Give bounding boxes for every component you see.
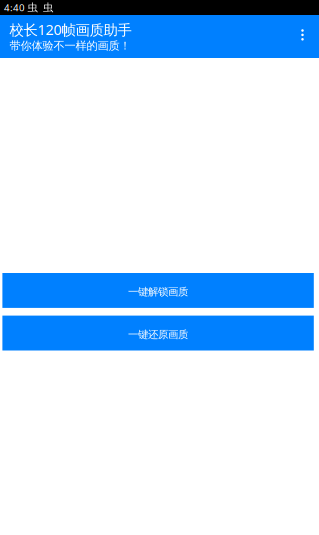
staticText: 一键解锁画质 <box>128 285 188 298</box>
button[interactable]: 一键还原画质 <box>2 316 314 350</box>
staticText: 一键还原画质 <box>128 328 188 341</box>
staticText: 虫 <box>43 1 53 14</box>
button[interactable]: More options <box>286 15 319 58</box>
staticText: 虫 <box>27 1 37 14</box>
staticText: 带你体验不一样的画质！ <box>9 39 130 53</box>
button[interactable]: 一键解锁画质 <box>2 273 314 308</box>
staticText: 校长120帧画质助手 <box>9 20 131 39</box>
staticText: 4:40 <box>4 1 25 14</box>
